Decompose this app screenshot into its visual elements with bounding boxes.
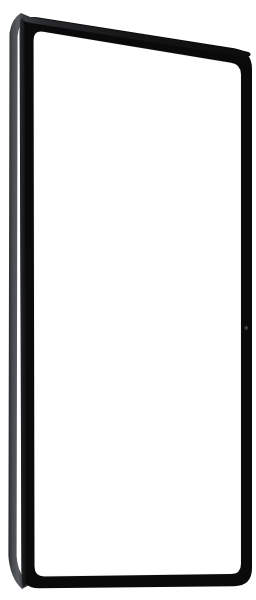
button[interactable]: Tablet device product image xyxy=(0,0,256,600)
